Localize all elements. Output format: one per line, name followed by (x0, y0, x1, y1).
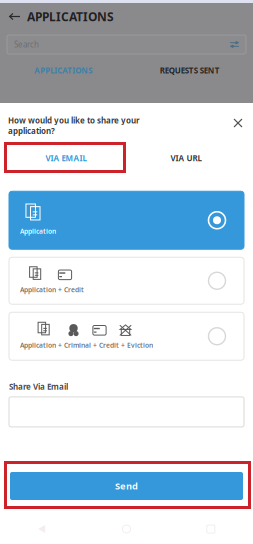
button[interactable]: Back (0, 525, 84, 533)
staticText: APPLICATIONS (34, 65, 92, 76)
staticText: Search (14, 39, 39, 50)
staticText: How would you like to share your applica… (8, 115, 140, 136)
button[interactable]: Send (10, 472, 243, 500)
button[interactable]: Application (9, 191, 244, 249)
button[interactable]: Close (230, 115, 246, 131)
staticText: Send (115, 480, 138, 492)
button[interactable]: VIA URL (126, 143, 246, 173)
button[interactable]: Application + Credit (9, 257, 244, 304)
staticText: Application + Credit (20, 285, 84, 294)
staticText: VIA URL (170, 153, 201, 163)
button[interactable]: APPLICATIONS (0, 65, 126, 76)
staticText: Application + Criminal + Credit + Evicti… (20, 341, 153, 350)
staticText: Application (20, 227, 56, 236)
button[interactable]: REQUESTS SENT (126, 65, 253, 76)
staticText: REQUESTS SENT (160, 65, 220, 76)
button[interactable]: APPLICATIONS (0, 3, 253, 30)
staticText: VIA EMAIL (45, 153, 86, 163)
button[interactable]: VIA EMAIL (0, 143, 126, 173)
staticText: Share Via Email (9, 381, 68, 392)
staticText: APPLICATIONS (27, 8, 114, 24)
button[interactable]: Application + Criminal + Credit + Evicti… (9, 312, 244, 360)
